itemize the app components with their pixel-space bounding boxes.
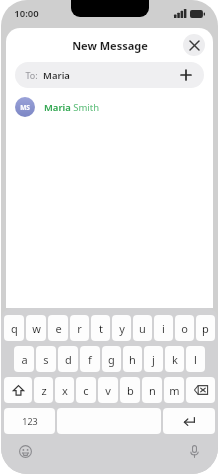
- button[interactable]: s: [36, 346, 56, 372]
- button[interactable]: p: [196, 315, 215, 341]
- button[interactable]: l: [186, 346, 205, 372]
- staticText: c: [83, 383, 89, 398]
- button[interactable]: Voice input: [184, 441, 204, 461]
- staticText: k: [172, 352, 178, 367]
- button[interactable]: Emoji: [15, 441, 35, 461]
- staticText: Maria: [43, 69, 70, 82]
- button[interactable]: x: [55, 377, 74, 403]
- button[interactable]: e: [48, 315, 68, 341]
- staticText: r: [77, 321, 82, 336]
- staticText: 10:00: [14, 7, 39, 20]
- button[interactable]: Backspace: [186, 377, 215, 403]
- button[interactable]: To:: [15, 62, 204, 88]
- button[interactable]: t: [91, 315, 110, 341]
- staticText: t: [99, 321, 103, 336]
- button[interactable]: b: [120, 377, 140, 403]
- button[interactable]: Enter: [163, 408, 215, 434]
- staticText: w: [32, 321, 41, 336]
- button[interactable]: g: [102, 346, 121, 372]
- staticText: 123: [22, 415, 38, 427]
- button[interactable]: Close: [183, 34, 205, 56]
- button[interactable]: Add contact: [178, 67, 194, 83]
- staticText: v: [105, 383, 111, 398]
- staticText: h: [129, 352, 136, 367]
- button[interactable]: f: [80, 346, 100, 372]
- button[interactable]: d: [58, 346, 78, 372]
- button[interactable]: i: [154, 315, 173, 341]
- button[interactable]: MS: [6, 94, 213, 120]
- staticText: p: [202, 321, 209, 336]
- button[interactable]: Shift: [4, 377, 32, 403]
- button[interactable]: 123: [4, 408, 55, 434]
- button[interactable]: h: [123, 346, 142, 372]
- staticText: b: [127, 383, 134, 398]
- staticText: f: [88, 352, 92, 367]
- button[interactable]: v: [98, 377, 118, 403]
- staticText: q: [11, 321, 18, 336]
- button[interactable]: r: [70, 315, 89, 341]
- button[interactable]: m: [164, 377, 184, 403]
- staticText: m: [169, 383, 180, 398]
- staticText: To:: [25, 69, 38, 81]
- staticText: o: [181, 321, 188, 336]
- staticText: Maria Smith: [44, 101, 100, 114]
- button[interactable]: o: [175, 315, 194, 341]
- staticText: d: [65, 352, 72, 367]
- staticText: u: [139, 321, 146, 336]
- button[interactable]: j: [144, 346, 163, 372]
- staticText: y: [119, 321, 125, 336]
- staticText: x: [62, 383, 68, 398]
- staticText: l: [194, 352, 197, 367]
- button[interactable]: w: [26, 315, 46, 341]
- staticText: n: [149, 383, 156, 398]
- staticText: z: [41, 383, 47, 398]
- button[interactable]: c: [76, 377, 96, 403]
- staticText: a: [21, 352, 28, 367]
- staticText: i: [162, 321, 165, 336]
- button[interactable]: a: [14, 346, 34, 372]
- staticText: j: [152, 352, 155, 367]
- staticText: e: [55, 321, 62, 336]
- button[interactable]: q: [4, 315, 24, 341]
- button[interactable]: k: [165, 346, 184, 372]
- button[interactable]: y: [112, 315, 131, 341]
- staticText: s: [43, 352, 49, 367]
- staticText: MS: [20, 103, 30, 112]
- button[interactable]: n: [142, 377, 162, 403]
- button[interactable]: z: [34, 377, 53, 403]
- button[interactable]: u: [133, 315, 152, 341]
- staticText: g: [108, 352, 115, 367]
- staticText: New Message: [72, 38, 148, 53]
